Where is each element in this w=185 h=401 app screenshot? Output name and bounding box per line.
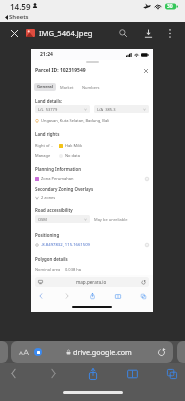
- staticText: Parcel ID: 102319549: [35, 67, 86, 74]
- staticText: map.perara.io: [76, 279, 107, 285]
- button[interactable]: L/L 53779: [35, 105, 90, 113]
- button[interactable]: Market: [56, 84, 78, 91]
- staticText: Road accessibility: [35, 207, 73, 213]
- button[interactable]: Close: [7, 26, 22, 41]
- button[interactable]: map.perara.io: [35, 277, 149, 287]
- staticText: Zona Perumahan: [41, 176, 74, 181]
- staticText: Manage: [35, 153, 51, 158]
- button[interactable]: Bookmarks: [113, 291, 123, 301]
- staticText: -8.8497832, 115.1661509: [41, 242, 90, 248]
- button[interactable]: General: [34, 83, 56, 91]
- button[interactable]: Share: [83, 364, 102, 383]
- staticText: drive.google.com: [73, 347, 132, 357]
- staticText: Nominal area: [35, 267, 61, 272]
- staticText: May be unreliable: [94, 217, 128, 222]
- button[interactable]: Bookmarks: [123, 364, 142, 383]
- staticText: General: [37, 84, 53, 90]
- button[interactable]: Back: [36, 291, 46, 301]
- staticText: 0.038 ha: [65, 267, 81, 272]
- staticText: OSM: [38, 217, 47, 222]
- staticText: Polygon details: [35, 256, 68, 262]
- button[interactable]: Numbers: [78, 84, 104, 91]
- staticText: Positioning: [35, 232, 60, 238]
- button[interactable]: Tabs: [138, 291, 148, 301]
- staticText: Secondary Zoning Overlays: [35, 186, 94, 192]
- button[interactable]: drive.google.com: [11, 341, 173, 363]
- staticText: No data: [65, 153, 80, 158]
- staticText: Land details:: [35, 98, 63, 104]
- button[interactable]: L/A 385.3: [94, 105, 149, 113]
- button[interactable]: Close sheet: [142, 67, 149, 74]
- staticText: IMG_5464.jpeg: [39, 28, 93, 38]
- button[interactable]: 2 zones: [35, 195, 56, 200]
- staticText: Planning Information: [35, 166, 82, 172]
- staticText: Numbers: [82, 85, 100, 90]
- staticText: Market: [60, 85, 74, 90]
- staticText: 21:24: [40, 51, 53, 58]
- staticText: Ungasan, Kuta Selatan, Badung, Bali: [41, 118, 110, 123]
- staticText: 2 zones: [41, 195, 56, 200]
- staticText: 14.59: [10, 1, 31, 12]
- button[interactable]: Forward: [44, 364, 63, 383]
- staticText: Land rights: [35, 131, 60, 137]
- button[interactable]: Forward: [62, 291, 72, 301]
- staticText: L/L 53779: [38, 107, 58, 112]
- button[interactable]: Back: [4, 364, 23, 383]
- button[interactable]: Share page: [87, 291, 97, 301]
- button[interactable]: More options: [162, 25, 178, 41]
- staticText: L/A 385.3: [97, 107, 116, 112]
- button[interactable]: Tabs: [162, 364, 181, 383]
- button[interactable]: Search: [112, 22, 134, 44]
- button[interactable]: OSM: [35, 215, 90, 223]
- staticText: 30: [167, 3, 173, 10]
- staticText: Sheets: [9, 13, 29, 21]
- staticText: Hak Milik: [65, 143, 83, 148]
- button[interactable]: Download: [137, 22, 159, 44]
- staticText: Right of ..: [35, 143, 53, 148]
